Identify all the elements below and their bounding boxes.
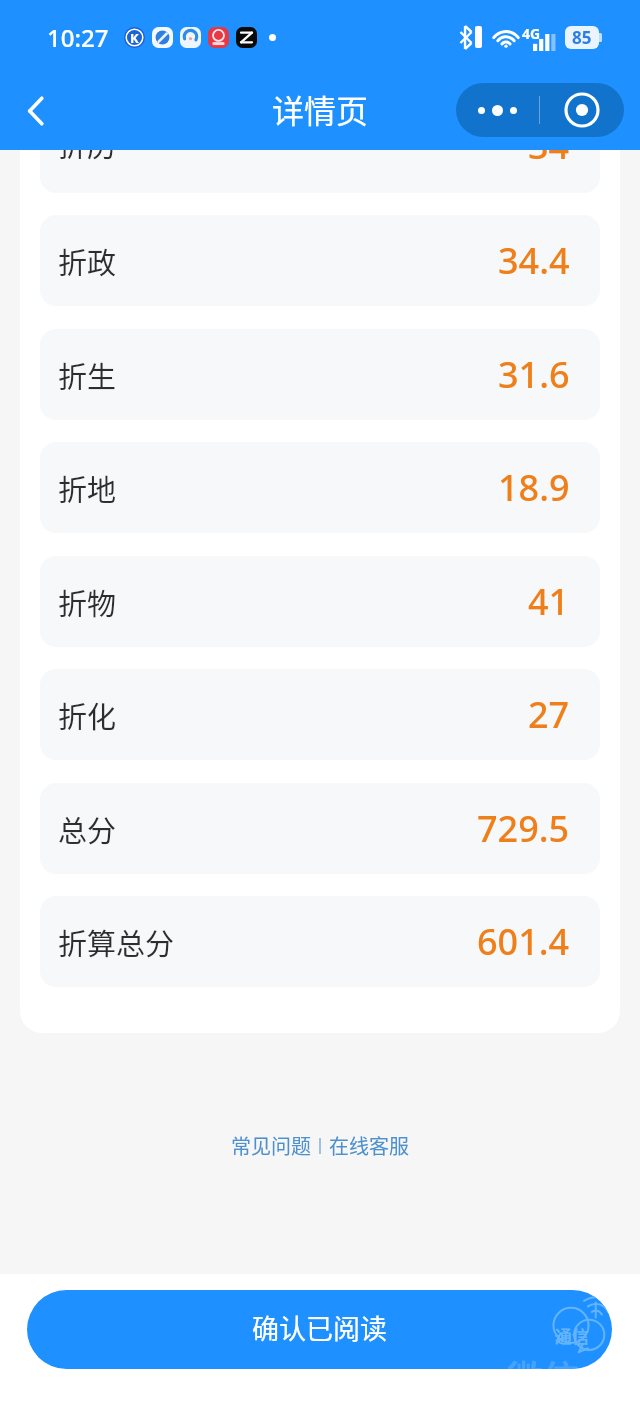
button[interactable]: Back [10,83,66,139]
button[interactable]: 确认已阅读 [27,1290,612,1369]
staticText: 折算总分 [58,921,175,963]
staticText: 34.4 [498,236,570,285]
staticText: 折生 [58,354,117,396]
staticText: 详情页 [272,86,369,132]
button[interactable]: 折算总分 [40,896,600,987]
staticText: K [130,29,139,47]
button[interactable]: 折政 [40,215,600,306]
staticText: 确认已阅读 [252,1308,387,1347]
staticText: 折物 [58,581,117,623]
button[interactable]: 总分 [40,783,600,874]
staticText: 31.6 [498,350,570,399]
button[interactable]: 折地 [40,442,600,533]
button[interactable]: 折物 [40,556,600,647]
button[interactable]: 常见问题 [231,1131,311,1160]
button[interactable]: 折生 [40,329,600,420]
staticText: 601.4 [477,917,570,966]
staticText: 折历 [58,150,117,165]
staticText: 总分 [58,808,117,850]
staticText: 18.9 [498,463,570,512]
staticText: 729.5 [477,804,570,853]
staticText: 41 [528,577,570,626]
staticText: 27 [528,690,570,739]
staticText: 通信 [555,1323,589,1348]
button[interactable]: 在线客服 [329,1131,409,1160]
button[interactable]: More options [456,83,539,137]
button[interactable]: 折化 [40,669,600,760]
button[interactable]: Close mini program [540,83,624,137]
staticText: 34 [528,150,570,164]
staticText: 10:27 [47,21,109,54]
staticText: 折政 [58,240,117,282]
staticText: 折地 [58,467,117,509]
button[interactable]: 折历 [40,150,600,193]
staticText: 85 [572,26,592,49]
staticText: 4G [522,24,541,43]
staticText: 折化 [58,694,117,736]
staticText: 微信 [507,1350,580,1369]
